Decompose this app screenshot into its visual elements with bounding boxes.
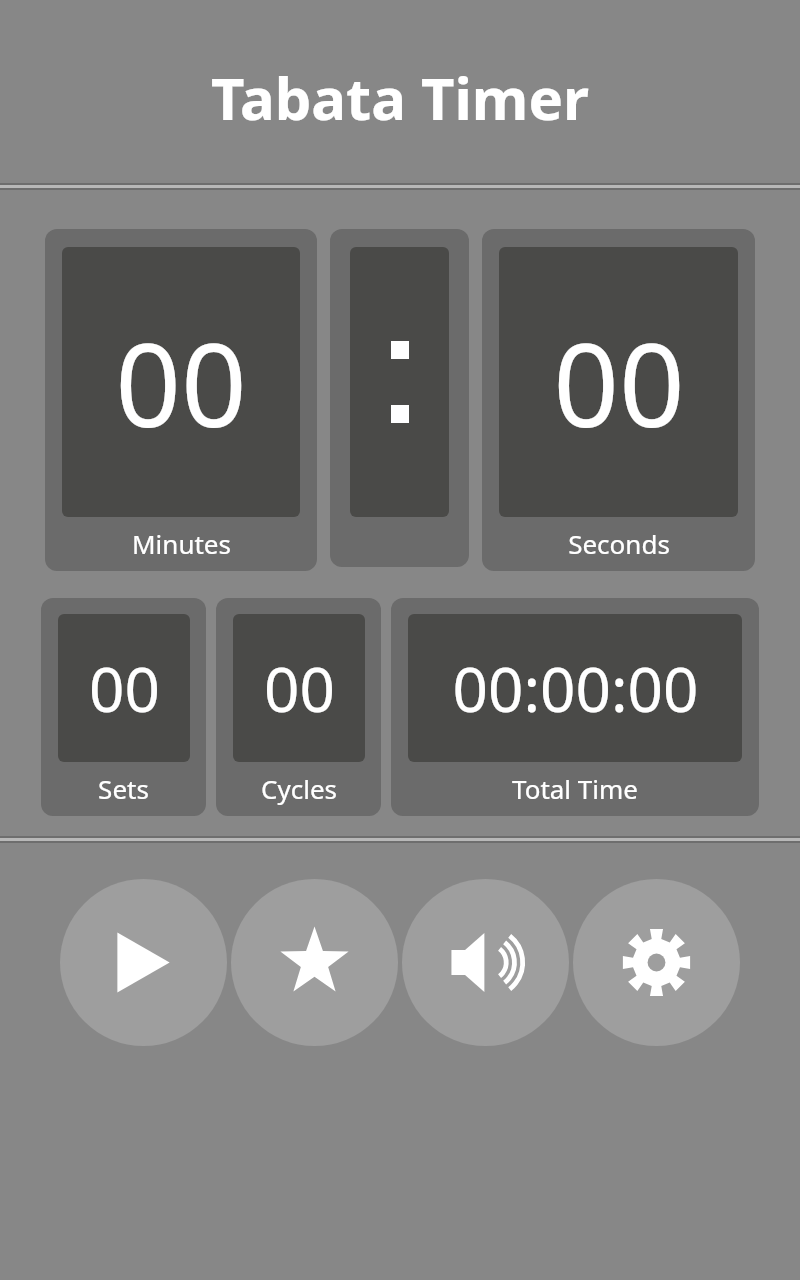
button[interactable] — [330, 229, 469, 567]
staticText: Sets — [98, 771, 149, 806]
button[interactable]: 00 — [216, 598, 381, 816]
staticText: 00 — [89, 646, 160, 730]
staticText: Total Time — [512, 771, 638, 806]
button[interactable]: Favorites — [231, 879, 398, 1046]
staticText: 00:00:00 — [452, 646, 699, 730]
staticText: Cycles — [261, 771, 337, 806]
button[interactable]: 00 — [482, 229, 755, 571]
staticText: Seconds — [568, 526, 670, 561]
staticText: 00 — [115, 304, 247, 461]
staticText: 00 — [264, 646, 335, 730]
staticText: 00 — [553, 304, 685, 461]
button[interactable]: 00 — [41, 598, 206, 816]
staticText: Tabata Timer — [211, 58, 589, 137]
button[interactable]: Settings — [573, 879, 740, 1046]
button[interactable]: 00 — [45, 229, 317, 571]
button[interactable]: Sound — [402, 879, 569, 1046]
button[interactable]: 00:00:00 — [391, 598, 759, 816]
staticText: Minutes — [132, 526, 231, 561]
button[interactable]: Start — [60, 879, 227, 1046]
